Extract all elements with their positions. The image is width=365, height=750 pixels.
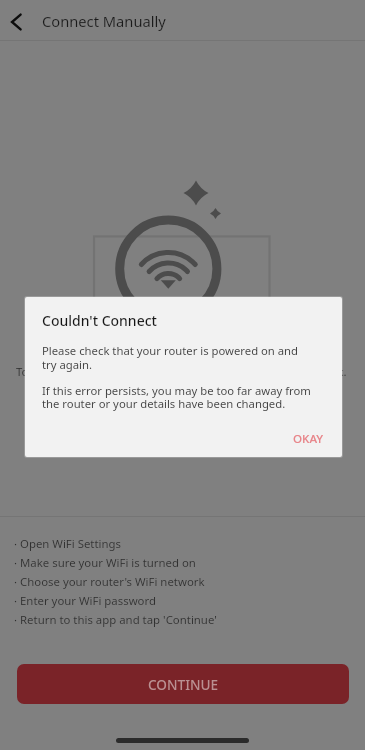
staticText: CONTINUE xyxy=(148,675,219,694)
button[interactable]: CONTINUE xyxy=(17,664,349,704)
staticText: Couldn't Connect xyxy=(42,311,157,330)
staticText: Connect Manually xyxy=(42,11,166,31)
button[interactable]: Back xyxy=(0,0,42,40)
staticText: To connect manually you must join your r… xyxy=(16,364,347,379)
staticText: OKAY xyxy=(293,431,324,447)
staticText: Please check that your router is powered… xyxy=(42,343,312,411)
staticText: · Open WiFi Settings · Make sure your Wi… xyxy=(14,536,217,627)
button[interactable]: OKAY xyxy=(285,425,332,453)
